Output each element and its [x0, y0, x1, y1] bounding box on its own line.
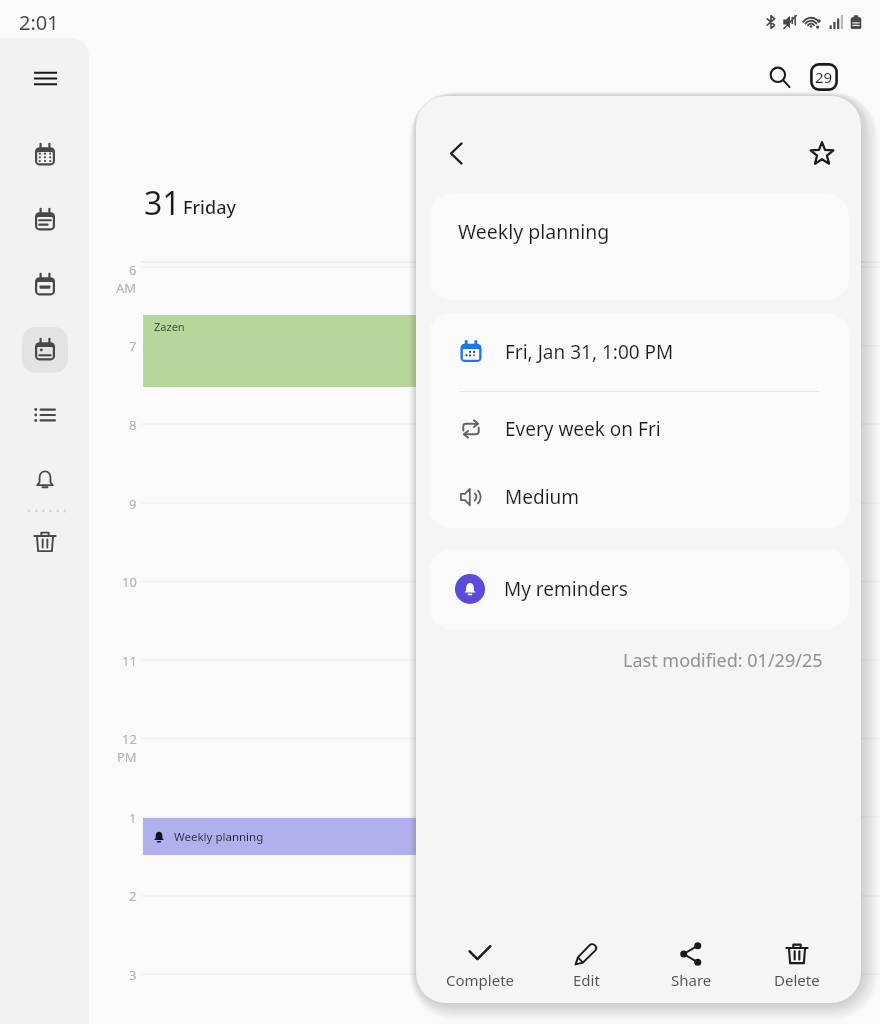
staticText: 1 [129, 809, 137, 827]
staticText: Complete [446, 970, 515, 990]
staticText: Friday [183, 195, 236, 220]
button[interactable]: Today [804, 57, 844, 97]
other: Task list [32, 402, 58, 428]
button[interactable]: Month view [22, 132, 68, 178]
staticText: 8 [129, 416, 137, 434]
staticText: Zazen [154, 319, 185, 334]
button[interactable]: Back [433, 130, 479, 176]
staticText: Delete [774, 970, 820, 990]
staticText: 6 [129, 261, 137, 279]
staticText: 11 [122, 652, 137, 670]
staticText: Fri, Jan 31, 1:00 PM [505, 339, 674, 365]
other: Menu [33, 66, 58, 91]
staticText: 10 [122, 573, 137, 591]
staticText: 31 [144, 181, 181, 225]
button[interactable]: Weekly planning [429, 194, 849, 300]
other: Event view [32, 337, 58, 363]
staticText: 12 [122, 730, 137, 748]
staticText: My reminders [504, 576, 628, 602]
other: Search [768, 65, 792, 89]
other: Trash [32, 529, 58, 555]
button[interactable]: Edit [544, 922, 628, 990]
staticText: 2:01 [19, 9, 59, 36]
button[interactable]: Search [760, 57, 800, 97]
staticText: Medium [505, 484, 580, 510]
button[interactable]: Zazen [143, 315, 543, 387]
staticText: 9 [129, 495, 137, 513]
other: Today [810, 63, 838, 91]
staticText: Last modified: 01/29/25 [623, 648, 823, 673]
button[interactable]: Weekly planning [143, 818, 543, 855]
button[interactable]: Every week on Fri [429, 392, 849, 465]
staticText: Weekly planning [458, 218, 610, 245]
staticText: PM [117, 748, 137, 766]
button[interactable]: Day view [22, 262, 68, 308]
other: Reminders [32, 467, 58, 493]
other: Back [444, 141, 469, 166]
button[interactable]: Task list [22, 392, 68, 438]
button[interactable]: My reminders [429, 549, 849, 629]
staticText: Weekly planning [174, 829, 264, 845]
button[interactable]: Menu [22, 55, 68, 101]
button[interactable]: Event view [22, 327, 68, 373]
other: Agenda view [32, 207, 58, 233]
button[interactable]: Trash [22, 519, 68, 565]
staticText: Edit [573, 970, 600, 990]
button[interactable]: Agenda view [22, 197, 68, 243]
staticText: Share [671, 970, 712, 990]
button[interactable]: Medium [429, 465, 849, 528]
staticText: Every week on Fri [505, 416, 661, 442]
button[interactable]: Share [649, 922, 733, 990]
button[interactable]: Fri, Jan 31, 1:00 PM [429, 313, 849, 391]
button[interactable]: Reminders [22, 457, 68, 503]
staticText: 7 [129, 337, 137, 355]
button[interactable]: Complete [438, 922, 522, 990]
other: Favourite [809, 140, 835, 166]
other: Month view [32, 142, 58, 168]
other: Day view [32, 272, 58, 298]
staticText: AM [116, 279, 137, 297]
button[interactable]: Delete [755, 922, 839, 990]
staticText: 3 [129, 966, 137, 984]
staticText: 2 [129, 887, 137, 905]
button[interactable]: Favourite [799, 130, 845, 176]
staticText: 29 [815, 67, 833, 87]
